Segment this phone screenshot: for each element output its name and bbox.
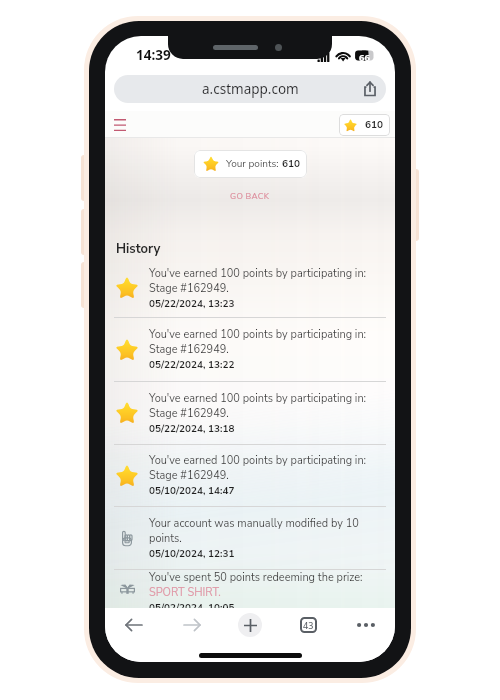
staticText: 05/22/2024, 13:22 xyxy=(149,358,235,372)
staticText: SPORT SHIRT. xyxy=(149,585,221,600)
staticText: GO BACK xyxy=(230,191,270,202)
staticText: 610 xyxy=(282,157,300,171)
staticText: 05/02/2024, 10:05 xyxy=(149,601,235,608)
staticText: 05/22/2024, 13:23 xyxy=(149,297,235,311)
button[interactable]: You've earned 100 points by participatin… xyxy=(105,259,395,317)
button[interactable]: You've earned 100 points by participatin… xyxy=(105,445,395,506)
staticText: You've earned 100 points by participatin… xyxy=(149,453,367,468)
staticText: You've spent 50 points redeeming the pri… xyxy=(149,570,363,585)
staticText: 43 xyxy=(303,619,314,631)
staticText: points. xyxy=(149,531,182,546)
staticText: 66 xyxy=(359,51,370,64)
staticText: History xyxy=(116,240,161,258)
button[interactable]: You've earned 100 points by participatin… xyxy=(105,318,395,381)
button[interactable]: Tabs xyxy=(300,617,317,633)
staticText: Your account was manually modified by 10 xyxy=(149,516,359,531)
staticText: Stage #162949. xyxy=(149,406,229,421)
button[interactable]: You've earned 100 points by participatin… xyxy=(105,382,395,444)
staticText: 14:39 xyxy=(136,46,171,64)
button[interactable]: GO BACK xyxy=(224,188,276,205)
staticText: Stage #162949. xyxy=(149,342,229,357)
button[interactable]: Your account was manually modified by 10 xyxy=(105,507,395,569)
staticText: You've earned 100 points by participatin… xyxy=(149,327,367,342)
button[interactable]: 610 xyxy=(343,114,383,136)
staticText: a.cstmapp.com xyxy=(202,80,299,98)
button[interactable]: New tab xyxy=(238,613,262,637)
button[interactable]: Menu xyxy=(114,119,126,131)
button[interactable]: More xyxy=(357,622,375,628)
button[interactable]: Share xyxy=(359,78,381,100)
staticText: 05/10/2024, 14:47 xyxy=(149,484,235,498)
staticText: Your points: xyxy=(226,157,282,171)
staticText: 610 xyxy=(365,118,383,132)
button[interactable]: Back xyxy=(124,615,144,635)
staticText: You've earned 100 points by participatin… xyxy=(149,391,367,406)
staticText: 05/10/2024, 12:31 xyxy=(149,547,235,561)
button[interactable]: You've spent 50 points redeeming the pri… xyxy=(105,570,395,608)
button[interactable]: Forward xyxy=(182,615,202,635)
staticText: You've earned 100 points by participatin… xyxy=(149,266,367,281)
staticText: 05/22/2024, 13:18 xyxy=(149,422,235,436)
button[interactable]: Your points: xyxy=(202,150,300,178)
button[interactable]: a.cstmapp.com xyxy=(114,75,386,103)
staticText: Stage #162949. xyxy=(149,468,229,483)
staticText: Stage #162949. xyxy=(149,281,229,296)
